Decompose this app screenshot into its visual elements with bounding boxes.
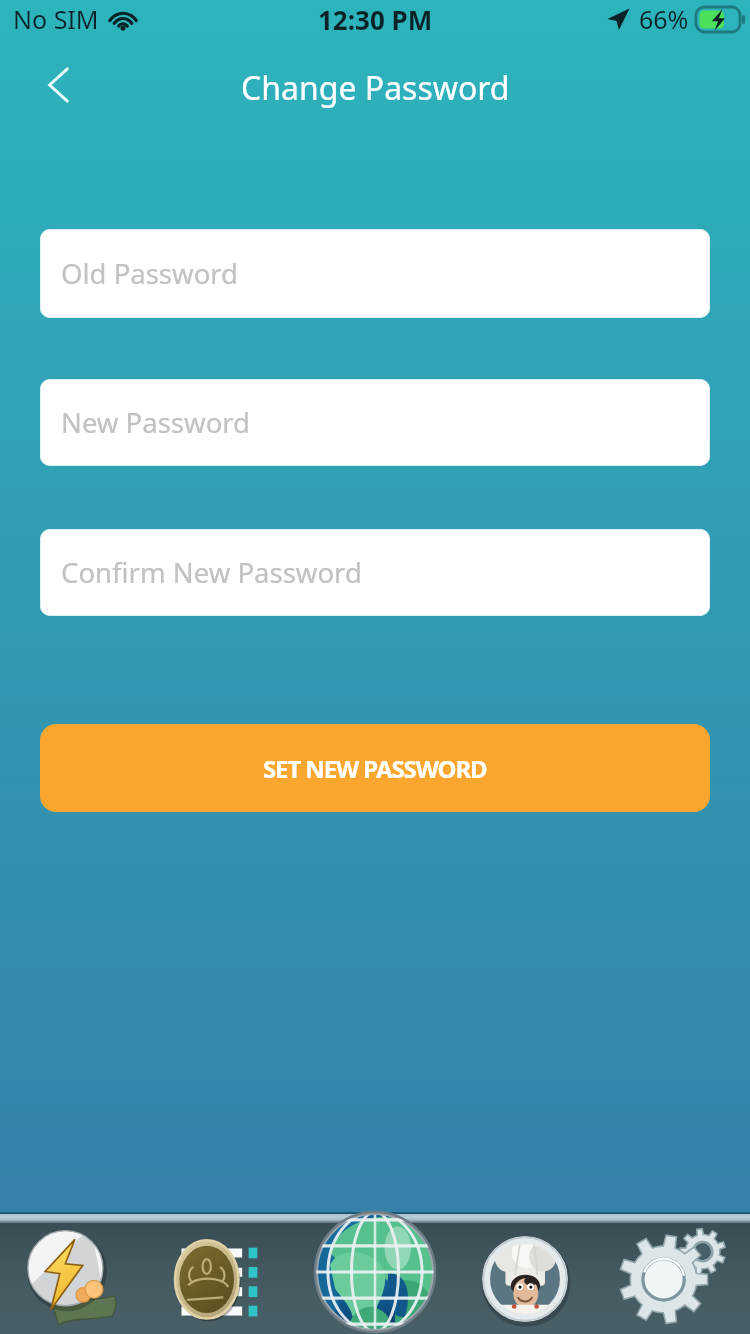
staticText: Confirm New Password [61,554,362,591]
button[interactable]: Rewards [157,1223,297,1334]
staticText: New Password [61,404,251,441]
staticText: 66% [639,2,689,36]
staticText: Change Password [241,66,510,110]
button[interactable]: Back [28,57,90,119]
button[interactable]: Promo [8,1223,148,1334]
button[interactable]: SET NEW PASSWORD [40,724,710,812]
button[interactable]: Explore [305,1223,445,1334]
button[interactable]: Settings [602,1223,742,1334]
button[interactable]: Old Password [40,229,710,318]
button[interactable]: Profile [453,1223,593,1334]
staticText: 12:30 PM [318,2,433,37]
staticText: No SIM [13,2,99,36]
staticText: SET NEW PASSWORD [263,752,487,785]
button[interactable]: Confirm New Password [40,529,710,616]
staticText: Old Password [61,255,239,292]
button[interactable]: New Password [40,379,710,466]
